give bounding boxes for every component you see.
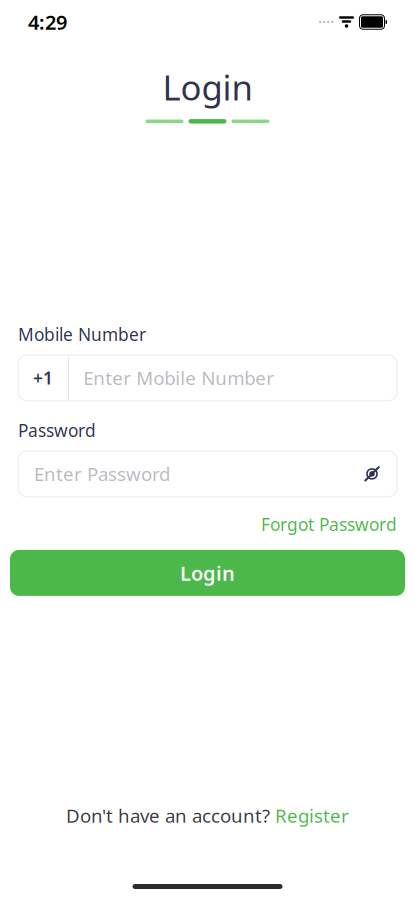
button[interactable]: Login xyxy=(10,550,405,596)
staticText: Forgot Password xyxy=(261,513,397,536)
staticText: 4:29 xyxy=(28,9,67,35)
staticText: Enter Mobile Number xyxy=(83,365,274,390)
staticText: Login xyxy=(180,560,235,586)
button[interactable]: Forgot Password xyxy=(261,507,397,542)
staticText: Don't have an account? xyxy=(66,803,270,828)
staticText: Register xyxy=(275,803,349,828)
button[interactable]: Don't have an account? xyxy=(50,795,365,836)
button[interactable]: Show password xyxy=(361,453,397,495)
staticText: +1 xyxy=(33,366,53,389)
staticText: Login xyxy=(162,64,252,110)
staticText: Enter Password xyxy=(34,461,170,486)
staticText: Mobile Number xyxy=(18,323,146,346)
staticText: Password xyxy=(18,419,96,442)
